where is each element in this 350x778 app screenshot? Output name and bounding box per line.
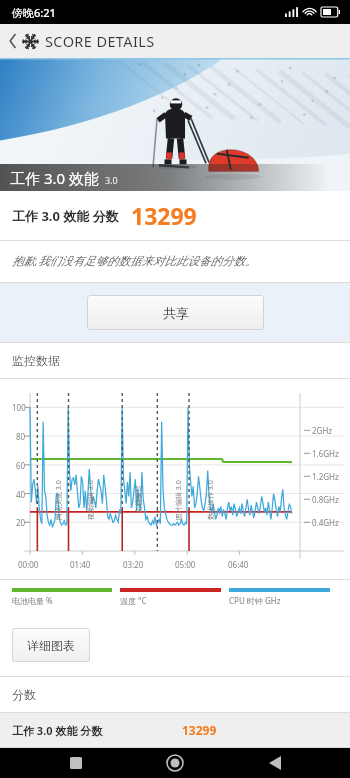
staticText: 00:00 [18,559,39,570]
staticText: 数据操作 3.0 [206,480,216,520]
staticText: 0.4GHz [312,517,339,528]
staticText: 01:40 [70,559,91,570]
staticText: 40 [16,489,26,500]
staticText: 工作 3.0 效能 [10,168,99,188]
staticText: 监控数据 [12,353,60,368]
staticText: 06:40 [228,559,249,570]
button[interactable]: Back [251,748,299,778]
staticText: 13299 [131,200,197,231]
button[interactable]: 详细图表 [12,628,90,662]
staticText: 60 [16,460,26,471]
staticText: 20 [16,517,26,528]
staticText: 1.2GHz [312,471,339,482]
staticText: 傍晚6:21 [12,5,56,20]
staticText: 视频编辑 3.0 [86,480,96,520]
staticText: 网络浏览 3.0 [54,480,64,520]
button[interactable]: Home [151,748,199,778]
button[interactable]: 共享 [87,295,264,330]
staticText: 文档编写 [133,485,142,513]
staticText: 13299 [182,722,217,738]
staticText: 100 [12,402,26,413]
staticText: 分数 [12,687,36,702]
staticText: 温度 °C [120,595,147,606]
staticText: 3.0 [105,174,118,186]
staticText: 03:20 [123,559,144,570]
staticText: 1.6GHz [312,448,339,459]
staticText: 抱歉,我们没有足够的数据来对比此设备的分数。 [12,253,257,269]
staticText: CPU 时钟 GHz [229,595,281,606]
staticText: 工作 3.0 效能 分数 [12,723,103,738]
button[interactable]: Back [4,28,22,54]
button[interactable]: Recents [52,748,100,778]
staticText: SCORE DETAILS [45,31,155,51]
staticText: 共享 [163,305,189,321]
staticText: 详细图表 [27,638,75,653]
staticText: 0.8GHz [312,494,339,505]
staticText: 图片编辑 3.0 [174,480,184,520]
staticText: 05:00 [175,559,196,570]
staticText: 80 [16,431,26,442]
staticText: 2GHz [312,425,333,436]
staticText: 工作 3.0 效能 分数 [12,207,119,225]
staticText: 电池电量 % [12,595,53,606]
